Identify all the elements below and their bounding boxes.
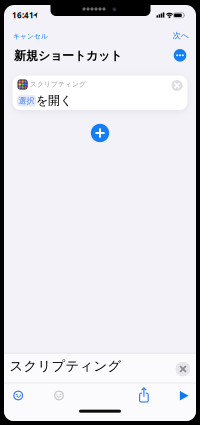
button[interactable] <box>12 389 24 401</box>
staticText: 選択 <box>18 96 34 106</box>
button[interactable]: 次へ <box>173 31 189 40</box>
staticText: 新規ショートカット <box>14 48 122 63</box>
staticText: 16:41 <box>12 10 34 20</box>
button[interactable]: 選択 <box>17 95 36 106</box>
button[interactable] <box>91 124 109 142</box>
staticText: スクリプティング <box>9 358 121 374</box>
button[interactable] <box>176 362 190 376</box>
button[interactable] <box>53 389 65 401</box>
staticText: キャンセル <box>13 32 48 40</box>
button[interactable] <box>180 391 189 401</box>
staticText: スクリプティング <box>30 80 86 88</box>
button[interactable]: キャンセル <box>13 32 48 40</box>
staticText: を開く <box>36 93 72 108</box>
button[interactable] <box>174 49 186 62</box>
button[interactable] <box>137 386 151 402</box>
button[interactable]: スクリプティング <box>12 75 187 110</box>
button[interactable]: スクリプティング <box>9 358 189 374</box>
staticText: 次へ <box>173 31 189 40</box>
button[interactable] <box>171 80 182 91</box>
